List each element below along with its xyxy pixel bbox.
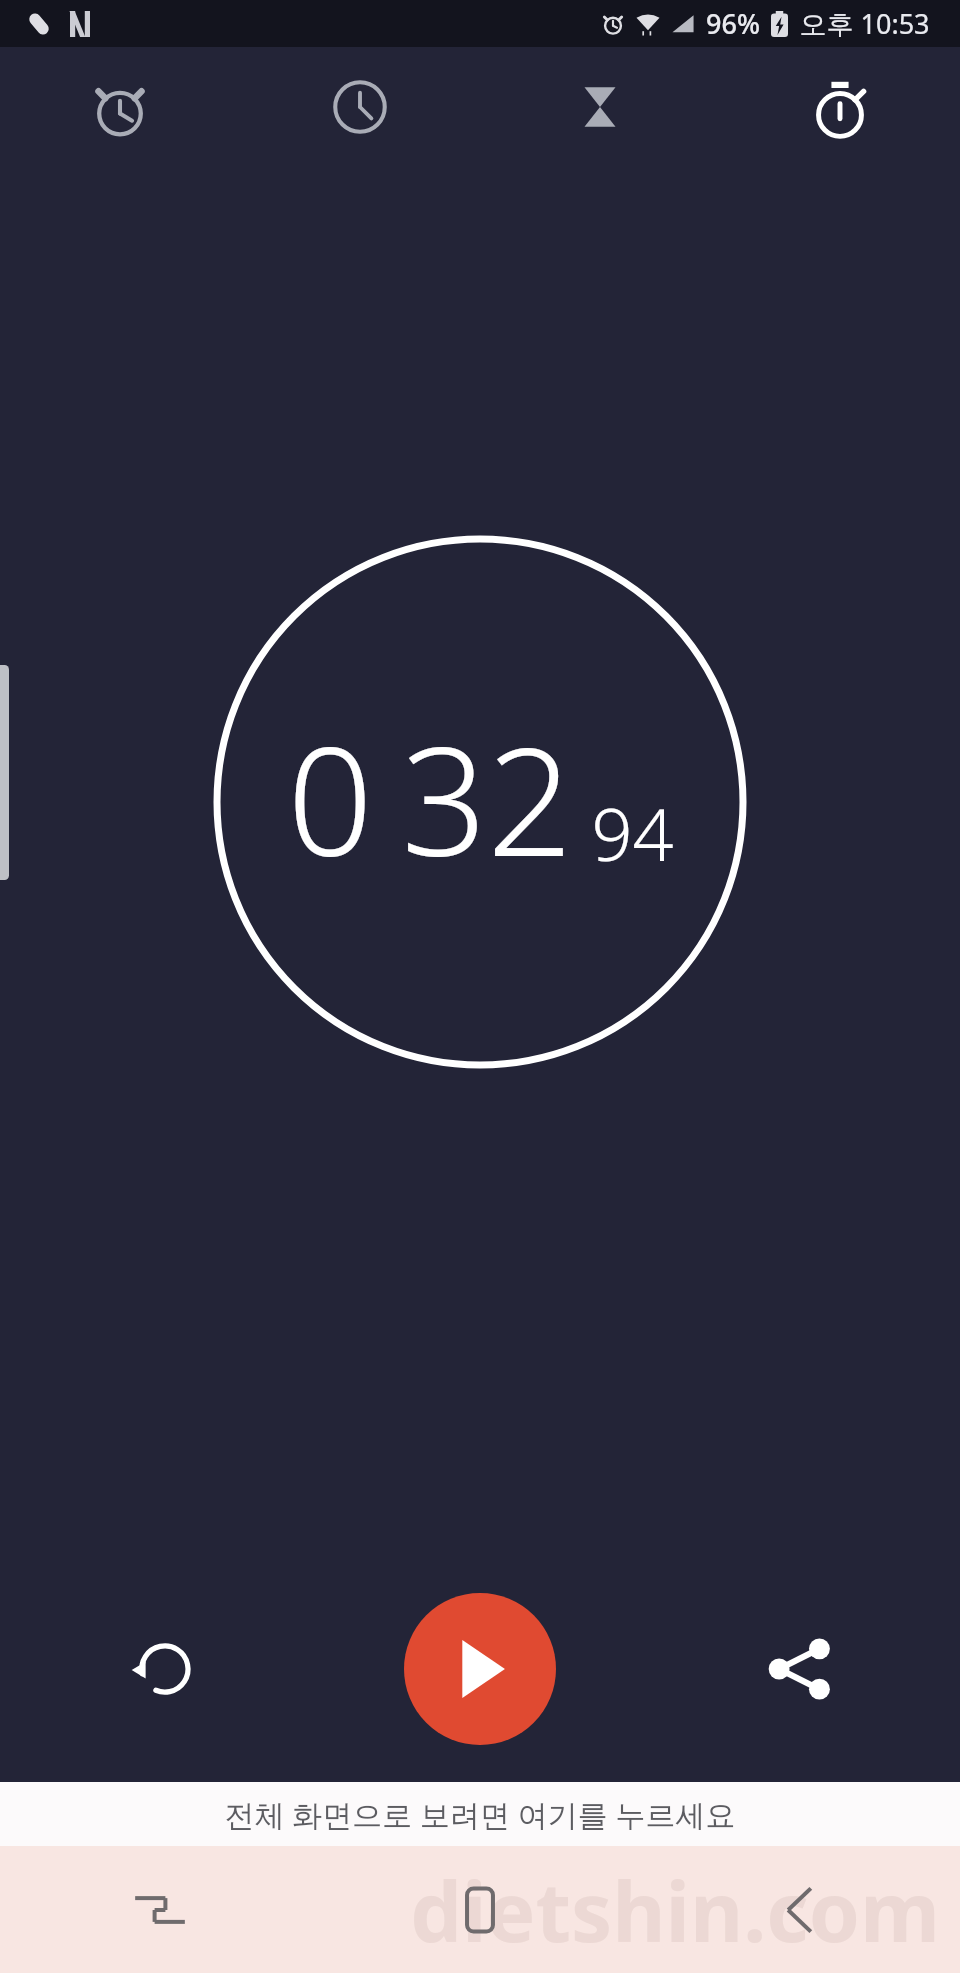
staticText: 96% [706, 5, 760, 42]
staticText: 전체 화면으로 보려면 여기를 누르세요 [224, 1794, 736, 1835]
staticText: 0 [287, 696, 373, 900]
button[interactable]: Reset [90, 1599, 230, 1739]
button[interactable]: Recents [0, 1846, 320, 1973]
staticText: 32 [401, 696, 573, 900]
button[interactable]: Alarm [0, 47, 240, 167]
button[interactable]: Home [320, 1846, 640, 1973]
staticText: 94 [591, 784, 674, 882]
staticText: dietshin.com [410, 1854, 940, 1966]
button[interactable]: 전체 화면으로 보려면 여기를 누르세요 [0, 1782, 960, 1846]
button[interactable]: Share [730, 1599, 870, 1739]
button[interactable]: Start [404, 1593, 556, 1745]
button[interactable]: World clock [240, 47, 480, 167]
button[interactable]: Stopwatch [720, 47, 960, 167]
button[interactable]: Timer [480, 47, 720, 167]
button[interactable]: Back [640, 1846, 960, 1973]
staticText: 오후 10:53 [799, 5, 930, 42]
